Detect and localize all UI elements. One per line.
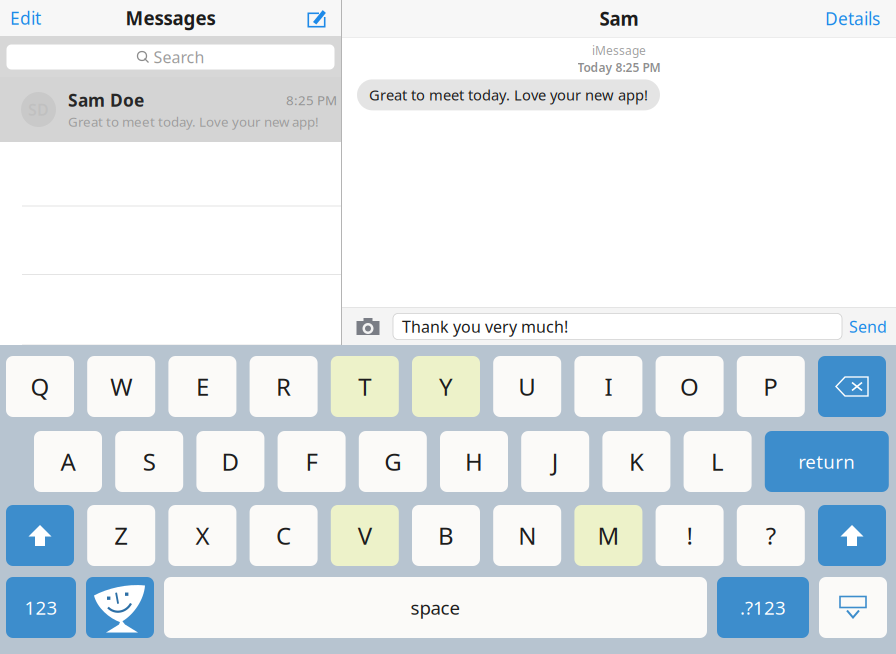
staticText: U: [518, 371, 536, 402]
staticText: Y: [439, 371, 453, 402]
button[interactable]: W: [87, 356, 155, 417]
button[interactable]: X: [168, 505, 236, 566]
staticText: H: [465, 446, 483, 477]
button[interactable]: C: [250, 505, 318, 566]
button[interactable]: N: [493, 505, 561, 566]
staticText: 123: [24, 595, 57, 620]
button[interactable]: H: [440, 431, 508, 492]
staticText: Today 8:25 PM: [577, 59, 660, 75]
staticText: G: [384, 446, 401, 477]
button[interactable]: G: [359, 431, 427, 492]
staticText: Search: [153, 46, 204, 68]
staticText: ?: [766, 520, 776, 551]
button[interactable]: !: [656, 505, 724, 566]
staticText: Q: [30, 371, 49, 402]
staticText: Sam Doe: [68, 89, 144, 112]
staticText: space: [410, 595, 460, 620]
staticText: Details: [825, 7, 880, 30]
button[interactable]: 123: [6, 577, 76, 638]
staticText: M: [597, 520, 619, 551]
button[interactable]: A: [34, 431, 102, 492]
staticText: S: [143, 446, 156, 477]
button[interactable]: O: [656, 356, 724, 417]
staticText: Thank you very much!: [402, 316, 568, 337]
button[interactable]: V: [331, 505, 399, 566]
button[interactable]: R: [250, 356, 318, 417]
button[interactable]: K: [602, 431, 670, 492]
button[interactable]: return: [765, 431, 889, 492]
staticText: C: [276, 520, 291, 551]
button[interactable]: space: [164, 577, 707, 638]
staticText: L: [711, 446, 724, 477]
staticText: Messages: [125, 6, 215, 30]
button[interactable]: Delete: [818, 356, 886, 417]
button[interactable]: Shift: [818, 505, 886, 566]
button[interactable]: Dictation: [86, 577, 154, 638]
staticText: E: [196, 371, 209, 402]
staticText: X: [195, 520, 209, 551]
staticText: iMessage: [592, 42, 646, 58]
staticText: T: [358, 371, 371, 402]
staticText: SD: [28, 99, 49, 120]
button[interactable]: U: [493, 356, 561, 417]
staticText: W: [110, 371, 132, 402]
staticText: Edit: [10, 6, 41, 29]
button[interactable]: Hide Keyboard: [819, 577, 887, 638]
staticText: O: [680, 371, 699, 402]
button[interactable]: Edit: [2, 0, 49, 36]
staticText: R: [276, 371, 291, 402]
button[interactable]: Q: [6, 356, 74, 417]
button[interactable]: F: [278, 431, 346, 492]
staticText: Great to meet today. Love your new app!: [68, 113, 319, 130]
button[interactable]: L: [684, 431, 752, 492]
button[interactable]: I: [574, 356, 642, 417]
staticText: N: [518, 520, 536, 551]
staticText: Z: [114, 520, 128, 551]
button[interactable]: Y: [412, 356, 480, 417]
staticText: V: [358, 520, 372, 551]
button[interactable]: Compose: [301, 3, 333, 33]
staticText: B: [438, 520, 454, 551]
staticText: Send: [849, 316, 887, 337]
staticText: !: [687, 520, 693, 551]
button[interactable]: J: [521, 431, 589, 492]
button[interactable]: D: [196, 431, 264, 492]
button[interactable]: SD: [0, 77, 341, 142]
staticText: A: [60, 446, 75, 477]
button[interactable]: Camera: [350, 312, 386, 340]
button[interactable]: P: [737, 356, 805, 417]
staticText: P: [763, 371, 778, 402]
staticText: 8:25 PM: [286, 91, 337, 109]
staticText: .?123: [740, 595, 786, 620]
button[interactable]: T: [331, 356, 399, 417]
button[interactable]: ?: [737, 505, 805, 566]
button[interactable]: E: [168, 356, 236, 417]
button[interactable]: M: [574, 505, 642, 566]
staticText: I: [604, 371, 612, 402]
button[interactable]: Z: [87, 505, 155, 566]
staticText: Sam: [599, 6, 638, 31]
staticText: J: [552, 446, 559, 477]
button[interactable]: S: [115, 431, 183, 492]
button[interactable]: Details: [817, 0, 888, 37]
button[interactable]: Shift: [6, 505, 74, 566]
staticText: Great to meet today. Love your new app!: [369, 85, 648, 105]
staticText: K: [629, 446, 644, 477]
staticText: D: [221, 446, 239, 477]
button[interactable]: .?123: [717, 577, 809, 638]
button[interactable]: Send: [846, 312, 890, 340]
staticText: return: [798, 449, 855, 474]
staticText: F: [306, 446, 318, 477]
button[interactable]: B: [412, 505, 480, 566]
